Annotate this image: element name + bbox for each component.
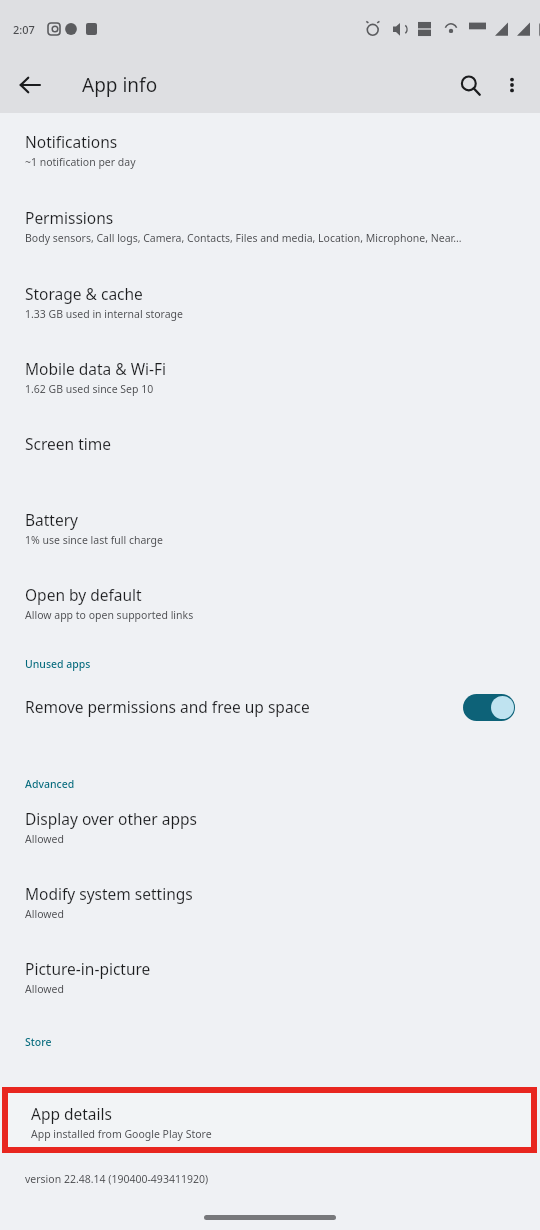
staticText: Permissions bbox=[25, 207, 114, 228]
button[interactable]: Remove permissions and free up space bbox=[0, 675, 540, 738]
button[interactable]: Mobile data & Wi-Fi bbox=[0, 340, 540, 415]
staticText: Notifications bbox=[25, 131, 118, 152]
staticText: Allowed bbox=[25, 907, 517, 921]
staticText: 1.33 GB used in internal storage bbox=[25, 307, 517, 321]
staticText: Modify system settings bbox=[25, 883, 193, 904]
button[interactable]: Display over other apps bbox=[0, 795, 540, 870]
staticText: Battery bbox=[25, 509, 79, 530]
button[interactable]: Storage & cache bbox=[0, 265, 540, 340]
staticText: Mobile data & Wi-Fi bbox=[25, 358, 167, 379]
button[interactable]: Search bbox=[446, 61, 494, 109]
button[interactable]: Modify system settings bbox=[0, 870, 540, 945]
button[interactable]: Back bbox=[6, 61, 54, 109]
staticText: 2:07 bbox=[13, 22, 35, 37]
staticText: Unused apps bbox=[25, 657, 91, 671]
staticText: Allow app to open supported links bbox=[25, 608, 517, 622]
staticText: App details bbox=[31, 1103, 112, 1124]
staticText: App installed from Google Play Store bbox=[31, 1127, 212, 1141]
staticText: Store bbox=[25, 1035, 52, 1049]
staticText: Allowed bbox=[25, 832, 517, 846]
staticText: 1% use since last full charge bbox=[25, 533, 517, 547]
button[interactable]: Screen time bbox=[0, 415, 540, 491]
staticText: App info bbox=[82, 72, 158, 98]
button[interactable]: More options bbox=[488, 61, 536, 109]
staticText: Advanced bbox=[25, 777, 75, 791]
staticText: Remove permissions and free up space bbox=[25, 696, 511, 717]
staticText: Display over other apps bbox=[25, 808, 197, 829]
staticText: Body sensors, Call logs, Camera, Contact… bbox=[25, 231, 517, 245]
staticText: Storage & cache bbox=[25, 283, 143, 304]
button[interactable]: Permissions bbox=[0, 189, 540, 265]
staticText: Picture-in-picture bbox=[25, 958, 151, 979]
button[interactable]: Battery bbox=[0, 491, 540, 566]
staticText: version 22.48.14 (190400-493411920) bbox=[25, 1172, 209, 1186]
staticText: Screen time bbox=[25, 433, 111, 454]
staticText: Allowed bbox=[25, 982, 517, 996]
staticText: Open by default bbox=[25, 584, 142, 605]
button[interactable]: Open by default bbox=[0, 566, 540, 628]
staticText: 1.62 GB used since Sep 10 bbox=[25, 382, 517, 396]
button[interactable]: App details bbox=[8, 1093, 531, 1147]
staticText: ~1 notification per day bbox=[25, 155, 517, 169]
button[interactable]: Notifications bbox=[0, 113, 540, 189]
button[interactable]: Picture-in-picture bbox=[0, 945, 540, 1007]
